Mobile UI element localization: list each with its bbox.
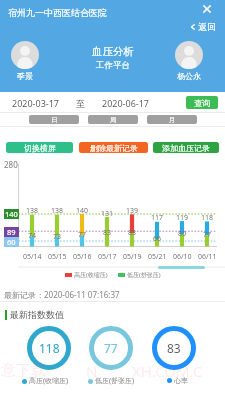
staticText: 280 [4, 159, 18, 170]
staticText: 05/17 [98, 252, 117, 262]
staticText: 日 [51, 116, 58, 124]
staticText: 77 [104, 340, 118, 356]
staticText: N [86, 361, 98, 381]
staticText: 切换横屏 [24, 143, 56, 153]
button[interactable]: 月 [147, 115, 197, 124]
staticText: 77 [203, 230, 212, 240]
staticText: 83 [128, 228, 137, 238]
staticText: 高压(收缩压) [29, 376, 69, 386]
staticText: 添加血压记录 [162, 143, 210, 153]
staticText: 心率 [174, 376, 188, 385]
staticText: 60 [7, 237, 16, 247]
staticText: 意下载 [1, 361, 46, 380]
staticText: 宿州九一中西医结合医院 [8, 7, 107, 18]
staticText: 删除最新记录 [90, 143, 138, 153]
button[interactable]: 周 [88, 115, 138, 124]
staticText: 118 [39, 340, 60, 356]
staticText: 83 [103, 228, 112, 238]
staticText: 返回 [198, 21, 216, 32]
staticText: XH.COM.C [132, 361, 203, 381]
staticText: 74 [28, 231, 37, 241]
staticText: 83 [167, 340, 181, 356]
staticText: 至 [76, 98, 85, 109]
staticText: 06/11 [198, 252, 217, 262]
staticText: 周 [110, 116, 117, 124]
staticText: 140 [76, 206, 89, 216]
staticText: 89 [7, 227, 16, 237]
button[interactable]: 查询 [186, 96, 218, 109]
staticText: 高压(收缩压) [74, 271, 108, 279]
staticText: 2020-06-17 [102, 97, 149, 109]
staticText: 05/15 [48, 252, 67, 262]
button[interactable]: 切换横屏 [6, 142, 73, 153]
button[interactable]: 2020-03-17 [4, 97, 66, 109]
staticText: 80 [178, 229, 187, 239]
button[interactable]: 2020-06-17 [94, 97, 156, 109]
button[interactable]: 日 [29, 115, 79, 124]
staticText: 血压分析 [92, 45, 134, 58]
staticText: 最新指数数值 [10, 309, 64, 320]
staticText: 138 [26, 206, 39, 216]
staticText: 138 [51, 206, 64, 216]
button[interactable]: 77 [89, 326, 133, 370]
staticText: 季景 [17, 71, 33, 81]
staticText: 118 [201, 213, 214, 223]
staticText: 低压(舒张压) [95, 376, 135, 386]
staticText: 119 [176, 213, 189, 223]
staticText: 05/14 [23, 252, 42, 262]
button[interactable]: 删除最新记录 [79, 142, 148, 153]
button[interactable]: Close [200, 2, 214, 16]
button[interactable]: 返回 [189, 21, 216, 32]
button[interactable]: 杨公永 [175, 41, 203, 81]
button[interactable]: 83 [152, 326, 196, 370]
button[interactable]: 118 [27, 326, 71, 370]
staticText: 77 [78, 230, 87, 240]
staticText: 66 [153, 234, 162, 244]
staticText: 05/16 [73, 252, 92, 262]
button[interactable]: 添加血压记录 [153, 142, 219, 153]
staticText: 2020-03-17 [12, 97, 59, 109]
staticText: 最新记录：2020-06-11 07:16:37 [4, 289, 120, 300]
staticText: 139 [126, 206, 139, 216]
staticText: 工作平台 [96, 60, 130, 71]
staticText: 月 [169, 116, 176, 124]
staticText: 73 [53, 232, 62, 242]
staticText: 杨公永 [177, 71, 201, 81]
staticText: 低压(舒张压) [127, 271, 161, 279]
button[interactable]: 季景 [11, 41, 39, 81]
staticText: 05/19 [123, 252, 142, 262]
staticText: 131 [101, 209, 114, 219]
staticText: 05/21 [148, 252, 167, 262]
staticText: 06/10 [173, 252, 192, 262]
staticText: 117 [151, 213, 164, 223]
staticText: 140 [5, 209, 18, 219]
staticText: 查询 [194, 98, 210, 108]
